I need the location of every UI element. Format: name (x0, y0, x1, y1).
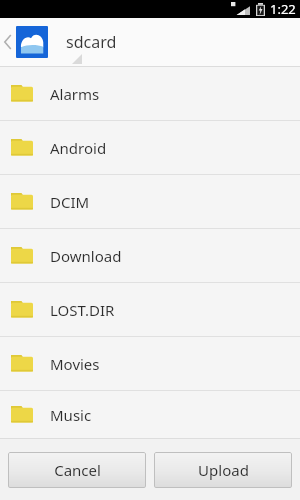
button[interactable]: Android (0, 121, 300, 174)
staticText: 1:22 (270, 0, 296, 18)
staticText: Download (50, 246, 122, 266)
button[interactable]: Alarms (0, 67, 300, 120)
staticText: sdcard (66, 31, 117, 53)
button[interactable]: Movies (0, 337, 300, 390)
button[interactable]: LOST.DIR (0, 283, 300, 336)
button[interactable]: SkyDrive (16, 26, 48, 58)
staticText: Cancel (54, 460, 101, 480)
button[interactable]: Back (0, 18, 16, 66)
button[interactable]: Cancel (8, 452, 146, 488)
button[interactable]: sdcard (66, 18, 300, 66)
staticText: Music (50, 405, 92, 425)
button[interactable]: Download (0, 229, 300, 282)
staticText: Android (50, 138, 107, 158)
staticText: Movies (50, 354, 100, 374)
staticText: Alarms (50, 84, 100, 104)
staticText: DCIM (50, 192, 90, 212)
button[interactable]: Upload (154, 452, 292, 488)
staticText: LOST.DIR (50, 300, 115, 320)
staticText: Upload (198, 460, 249, 480)
button[interactable]: Music (0, 391, 300, 438)
button[interactable]: DCIM (0, 175, 300, 228)
